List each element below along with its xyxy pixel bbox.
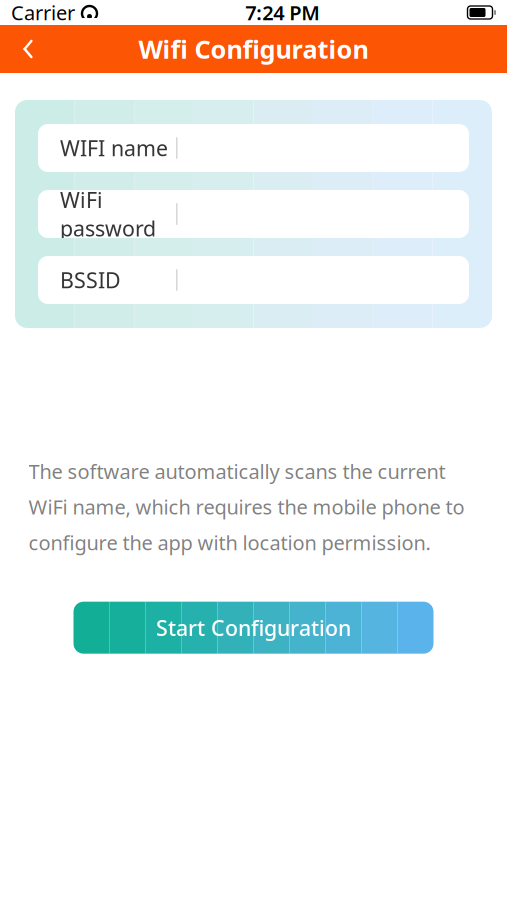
staticText: Start Configuration	[156, 613, 351, 642]
staticText: Wifi Configuration	[138, 32, 368, 66]
button[interactable]: Back	[4, 25, 52, 73]
staticText: 7:24 PM	[245, 0, 320, 26]
staticText: WiFi password	[60, 186, 156, 242]
button[interactable]: Start Configuration	[73, 602, 433, 654]
staticText: Carrier	[11, 0, 75, 26]
staticText: BSSID	[60, 266, 121, 294]
staticText: WIFI name	[60, 134, 168, 162]
staticText: The software automatically scans the cur…	[28, 458, 464, 556]
